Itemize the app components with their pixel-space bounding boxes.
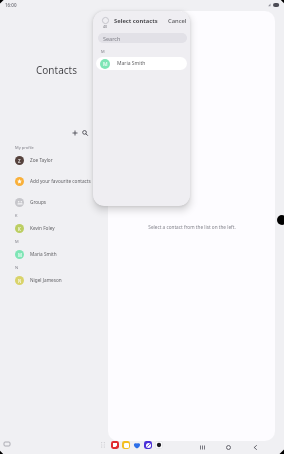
staticText: My profile xyxy=(15,145,34,150)
button[interactable]: Add contact xyxy=(68,126,82,140)
button[interactable]: Search xyxy=(98,33,187,43)
button[interactable]: App 5 xyxy=(155,441,163,449)
staticText: Z xyxy=(18,158,21,164)
button[interactable]: Groups xyxy=(0,192,107,212)
staticText: Select contacts xyxy=(114,17,158,25)
button[interactable]: M xyxy=(0,244,107,264)
button[interactable]: M xyxy=(96,57,187,70)
staticText: M xyxy=(18,252,22,258)
staticText: Zoe Taylor xyxy=(30,157,53,163)
button[interactable]: Search xyxy=(78,126,92,140)
staticText: Maria Smith xyxy=(30,251,57,257)
button[interactable]: Select all xyxy=(99,15,111,31)
staticText: K xyxy=(15,213,18,218)
button[interactable]: Back xyxy=(248,441,262,453)
button[interactable]: Recents xyxy=(195,441,209,453)
staticText: 40 xyxy=(103,24,108,29)
staticText: Contacts xyxy=(36,63,77,77)
button[interactable]: K xyxy=(0,218,107,238)
button[interactable]: App 2 xyxy=(122,441,130,449)
staticText: N xyxy=(15,265,19,270)
button[interactable]: Cancel xyxy=(166,15,189,27)
staticText: N xyxy=(18,278,22,284)
button[interactable]: App 3 xyxy=(133,441,141,449)
button[interactable]: Home xyxy=(221,441,235,453)
staticText: Maria Smith xyxy=(117,60,146,67)
staticText: 16:00 xyxy=(5,2,17,8)
staticText: Groups xyxy=(30,199,47,205)
button[interactable]: Keyboard xyxy=(3,440,10,447)
button[interactable]: Z xyxy=(0,150,107,170)
staticText: Search xyxy=(103,35,121,42)
staticText: M xyxy=(15,239,19,244)
staticText: Kevin Foley xyxy=(30,225,55,231)
button[interactable]: App 4 xyxy=(144,441,152,449)
staticText: M xyxy=(103,61,108,68)
staticText: Cancel xyxy=(168,17,187,25)
staticText: M xyxy=(101,49,105,54)
button[interactable]: N xyxy=(0,270,107,290)
button[interactable]: App 1 xyxy=(111,441,119,449)
staticText: K xyxy=(18,226,21,232)
button[interactable]: Add your favourite contacts xyxy=(0,171,107,191)
staticText: Nigel Jameson xyxy=(30,277,62,283)
staticText: Select a contact from the list on the le… xyxy=(148,224,236,230)
staticText: Add your favourite contacts xyxy=(30,178,91,184)
